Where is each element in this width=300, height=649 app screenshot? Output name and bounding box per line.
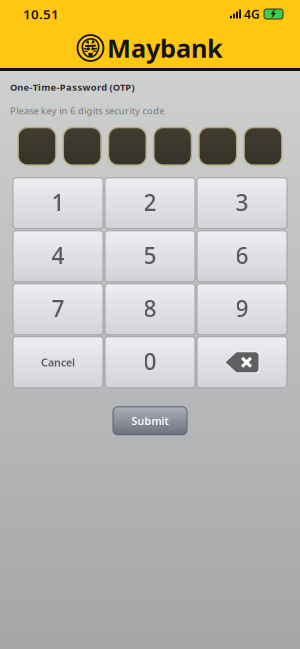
button[interactable]: 3: [197, 178, 287, 229]
staticText: 10.51: [23, 5, 59, 23]
button[interactable]: 2: [105, 178, 195, 229]
staticText: 1: [51, 187, 64, 217]
button[interactable]: 9: [197, 284, 287, 335]
button[interactable]: 0: [105, 337, 195, 388]
staticText: 9: [235, 293, 248, 323]
button[interactable]: Delete: [197, 337, 287, 388]
button[interactable]: 6: [197, 231, 287, 282]
button[interactable]: 8: [105, 284, 195, 335]
button[interactable]: Cancel: [13, 337, 103, 388]
staticText: Submit: [131, 414, 168, 428]
staticText: 6: [235, 240, 248, 270]
staticText: 4G: [244, 6, 260, 22]
staticText: Cancel: [41, 355, 75, 369]
staticText: 8: [143, 293, 156, 323]
button[interactable]: 1: [13, 178, 103, 229]
staticText: Maybank: [107, 31, 223, 65]
staticText: One-Time-Password (OTP): [10, 81, 134, 93]
button[interactable]: Submit: [113, 407, 187, 435]
staticText: 5: [143, 240, 156, 270]
staticText: 7: [51, 293, 64, 323]
staticText: 2: [143, 187, 156, 217]
button[interactable]: 5: [105, 231, 195, 282]
staticText: 3: [235, 187, 248, 217]
button[interactable]: 7: [13, 284, 103, 335]
staticText: 4: [51, 240, 64, 270]
staticText: 0: [143, 346, 156, 376]
button[interactable]: 4: [13, 231, 103, 282]
staticText: Please key in 6 digits security code: [10, 104, 164, 117]
